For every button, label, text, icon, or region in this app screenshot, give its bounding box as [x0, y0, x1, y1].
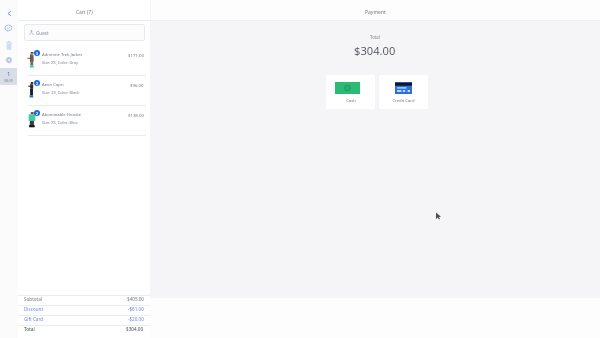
button[interactable]: Credit Card — [379, 75, 428, 109]
staticText: $96.00 — [130, 82, 144, 87]
staticText: Discount — [24, 306, 44, 312]
staticText: $171.00 — [128, 52, 144, 57]
button[interactable]: Guest — [24, 24, 145, 41]
staticText: 1 — [7, 70, 11, 77]
staticText: 2 — [36, 111, 39, 116]
staticText: $405.00 — [127, 296, 144, 302]
button[interactable]: 3 — [18, 45, 150, 75]
button[interactable]: Messages — [3, 23, 14, 34]
button[interactable]: Settings — [3, 54, 14, 65]
staticText: Size: XS, Color: Blue — [42, 120, 78, 125]
staticText: Total — [24, 326, 35, 332]
staticText: Total — [370, 34, 380, 40]
button[interactable]: Delete — [3, 40, 14, 51]
staticText: 2 — [36, 81, 39, 86]
staticText: Credit Card — [392, 98, 415, 103]
staticText: $304.00 — [354, 43, 396, 57]
staticText: 08:39 — [4, 78, 13, 83]
staticText: Cash — [346, 98, 356, 103]
button[interactable]: $ — [326, 75, 375, 109]
staticText: Cart (7) — [76, 9, 93, 15]
staticText: Abominable Hoodie — [42, 112, 82, 117]
staticText: Aeon Capri — [42, 82, 64, 87]
button[interactable]: 2 — [18, 75, 150, 105]
staticText: -$61.00 — [128, 306, 144, 312]
staticText: Gift Card — [24, 316, 44, 322]
staticText: Size: XS, Color: Gray — [42, 60, 79, 65]
staticText: 3 — [36, 51, 39, 56]
staticText: Subtotal — [24, 296, 43, 302]
staticText: Adrienne Trek Jacket — [42, 52, 83, 57]
staticText: $304.00 — [126, 326, 144, 332]
staticText: Guest — [36, 30, 49, 36]
button[interactable]: 1 — [0, 68, 17, 85]
staticText: $ — [346, 85, 349, 91]
staticText: Payment — [365, 9, 386, 15]
button[interactable]: 2 — [18, 105, 150, 135]
staticText: Size: 29, Color: Black — [42, 90, 80, 95]
button[interactable]: Back — [0, 0, 18, 27]
staticText: $138.00 — [128, 112, 144, 117]
staticText: -$20.00 — [128, 316, 144, 322]
